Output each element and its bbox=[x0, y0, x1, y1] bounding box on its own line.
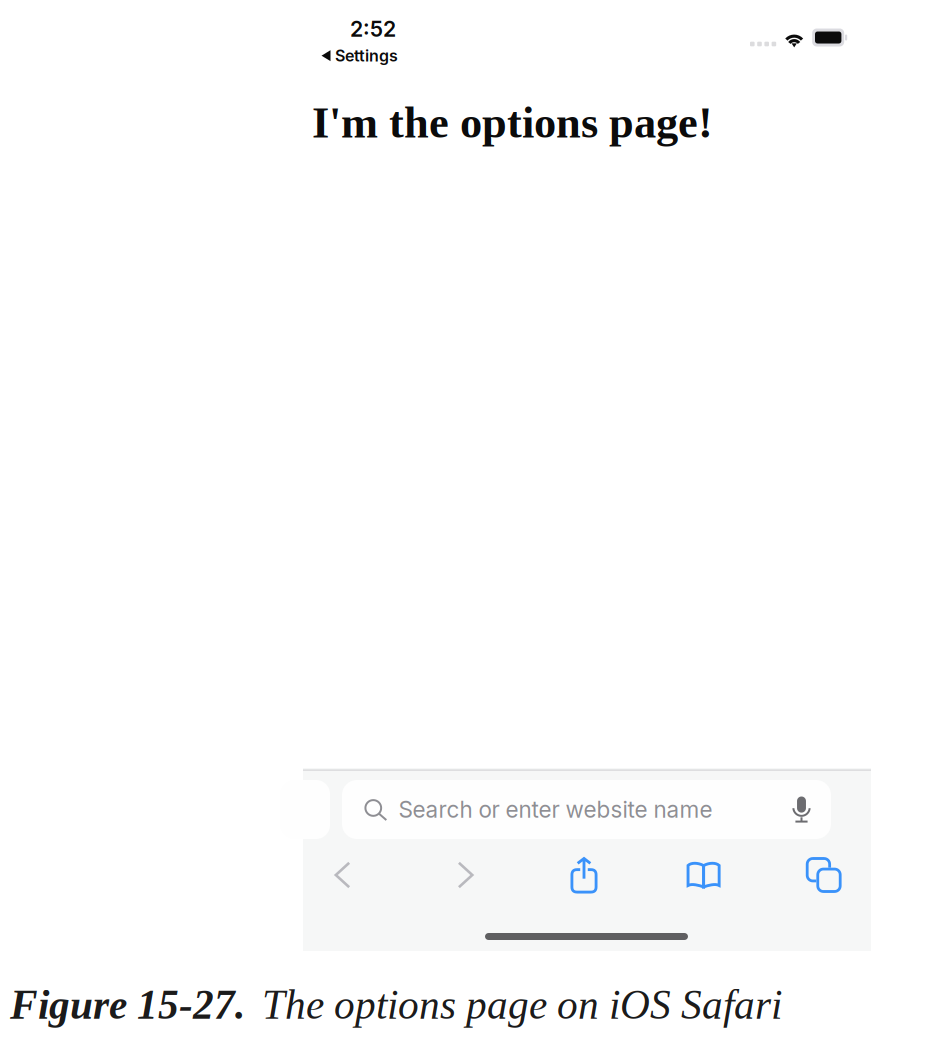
staticText: The options page on iOS Safari bbox=[262, 982, 782, 1028]
staticText: Figure 15-27. bbox=[10, 982, 245, 1028]
button[interactable]: Settings bbox=[321, 46, 398, 65]
staticText: Settings bbox=[335, 46, 398, 65]
button[interactable]: Forward bbox=[439, 853, 493, 897]
button[interactable]: Back bbox=[315, 853, 369, 897]
staticText: 2:52 bbox=[350, 16, 396, 42]
button[interactable]: Search or enter website name bbox=[342, 780, 831, 839]
staticText: Search or enter website name bbox=[398, 796, 712, 823]
staticText: I'm the options page! bbox=[312, 98, 713, 147]
button[interactable]: Tabs bbox=[797, 853, 851, 897]
button[interactable]: Bookmarks bbox=[677, 853, 731, 897]
button[interactable]: Share bbox=[557, 853, 611, 897]
